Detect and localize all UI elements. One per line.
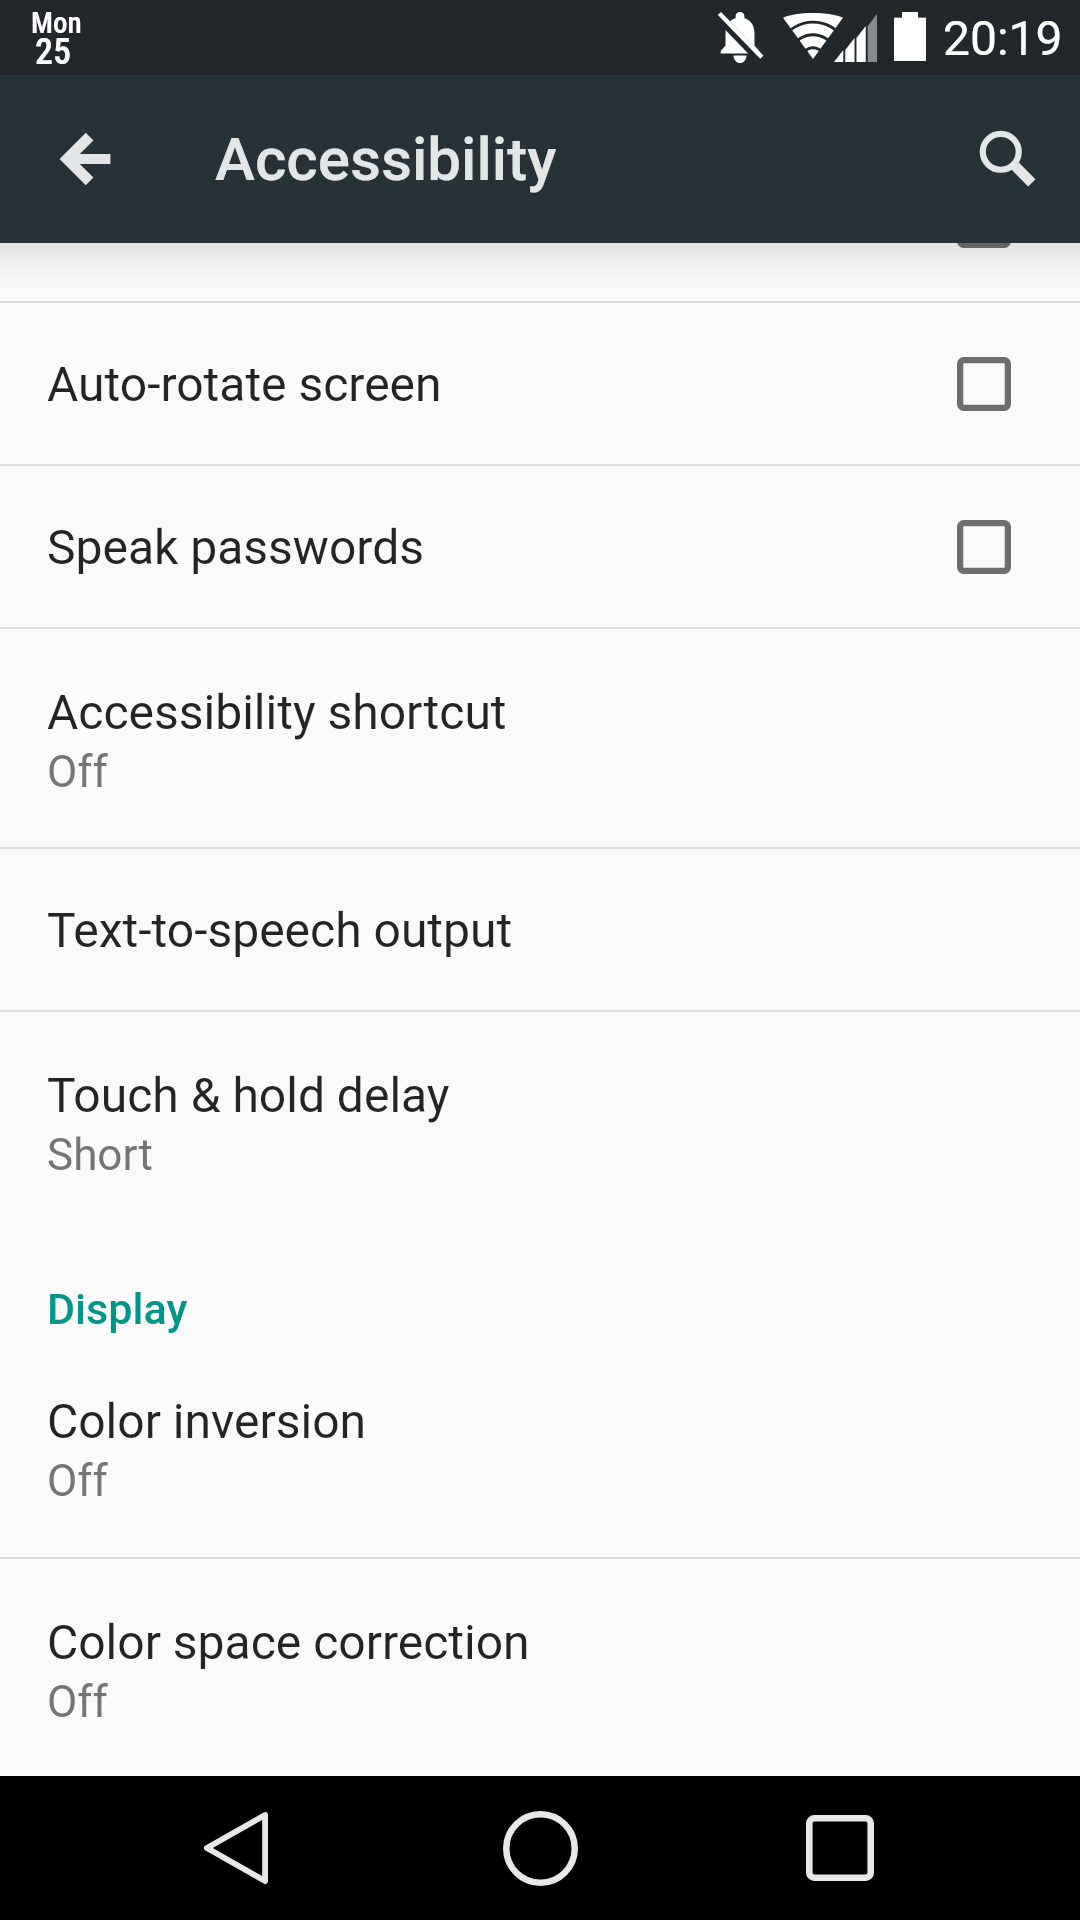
button[interactable]: Text-to-speech output [0,849,1080,1010]
staticText: Accessibility [215,124,557,194]
staticText: Color inversion [47,1393,367,1449]
staticText: Off [47,1676,108,1728]
button[interactable]: Color space correction [0,1559,1080,1776]
staticText: 20:19 [943,10,1063,66]
staticText: Display [47,1284,188,1334]
staticText: Speak passwords [47,519,424,575]
button[interactable]: Navigate up [0,75,168,243]
staticText: Accessibility shortcut [47,684,507,740]
button[interactable]: Accessibility shortcut [0,629,1080,847]
button[interactable]: Home [430,1776,650,1920]
staticText: Touch & hold delay [47,1067,450,1123]
button[interactable]: Auto-rotate screen [0,303,1080,464]
staticText: Color space correction [47,1614,530,1670]
button[interactable]: Search [912,75,1080,243]
button[interactable]: Back [126,1776,346,1920]
staticText: Off [47,1455,108,1507]
button[interactable]: Speak passwords [0,466,1080,627]
staticText: Mon [31,6,82,40]
staticText: Short [47,1129,153,1181]
staticText: Off [47,746,108,798]
staticText: Text-to-speech output [47,902,513,958]
staticText: Auto-rotate screen [47,356,442,412]
button[interactable]: Recent apps [730,1776,950,1920]
staticText: 25 [35,31,72,73]
button[interactable]: Touch & hold delay [0,1012,1080,1230]
button[interactable]: Color inversion [0,1337,1080,1557]
